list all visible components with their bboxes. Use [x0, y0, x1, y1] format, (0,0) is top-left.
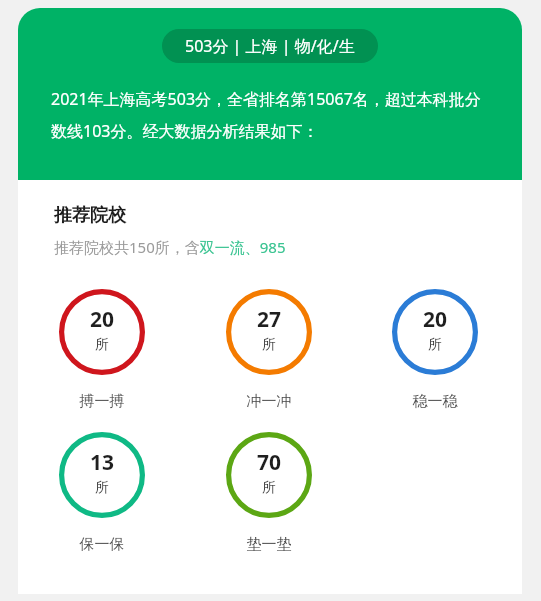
staticText: 搏一搏 [59, 392, 145, 411]
staticText: 20 [423, 305, 448, 334]
staticText: 垫一垫 [226, 535, 312, 554]
staticText: 推荐院校共150所，含双一流、985 [54, 237, 286, 257]
button[interactable]: 503分 | 上海 | 物/化/生 [162, 29, 378, 63]
staticText: 所 [262, 479, 276, 497]
staticText: 推荐院校 [54, 204, 126, 227]
button[interactable]: 冲一冲 [226, 289, 312, 411]
staticText: 所 [95, 336, 109, 354]
staticText: 2021年上海高考503分，全省排名第15067名，超过本科批分数线103分。经… [51, 88, 491, 142]
staticText: 保一保 [59, 535, 145, 554]
staticText: 20 [90, 305, 115, 334]
staticText: 冲一冲 [226, 392, 312, 411]
staticText: 所 [95, 479, 109, 497]
button[interactable]: 垫一垫 [226, 432, 312, 554]
staticText: 70 [257, 448, 282, 477]
button[interactable]: 搏一搏 [59, 289, 145, 411]
staticText: 所 [428, 336, 442, 354]
button[interactable]: 稳一稳 [392, 289, 478, 411]
staticText: 503分 | 上海 | 物/化/生 [185, 35, 355, 57]
staticText: 27 [257, 305, 282, 334]
button[interactable]: 保一保 [59, 432, 145, 554]
staticText: 所 [262, 336, 276, 354]
staticText: 稳一稳 [392, 392, 478, 411]
staticText: 13 [90, 448, 115, 477]
